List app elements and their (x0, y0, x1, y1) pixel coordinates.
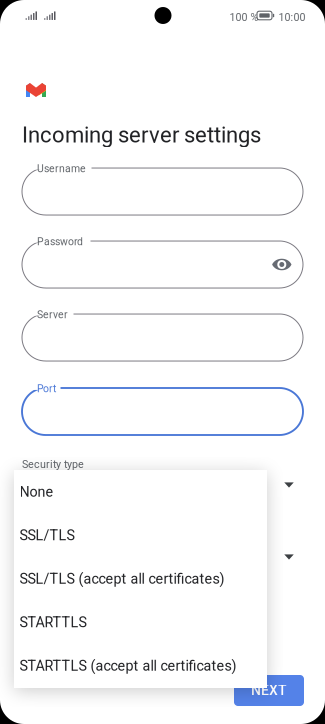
staticText: Username (37, 162, 86, 175)
staticText: 10:00 (278, 11, 305, 23)
staticText: 100 % (229, 11, 258, 23)
button[interactable]: Authentication (277, 547, 301, 567)
staticText: Password (37, 235, 83, 248)
staticText: None (19, 483, 53, 500)
button[interactable]: None (14, 470, 267, 513)
button[interactable]: STARTTLS (14, 600, 267, 644)
staticText: SSL/TLS (accept all certificates) (19, 570, 224, 587)
staticText: Incoming server settings (22, 122, 261, 148)
staticText: Server (37, 308, 68, 321)
button[interactable]: Security type (277, 475, 301, 495)
staticText: Port (37, 382, 56, 395)
button[interactable]: NEXT (234, 675, 304, 706)
button[interactable]: SSL/TLS (accept all certificates) (14, 557, 267, 600)
button[interactable]: SSL/TLS (14, 513, 267, 557)
staticText: SSL/TLS (19, 527, 74, 544)
staticText: Security type (22, 458, 84, 470)
staticText: STARTTLS (accept all certificates) (19, 657, 236, 674)
staticText: STARTTLS (19, 614, 86, 631)
button[interactable]: STARTTLS (accept all certificates) (14, 644, 267, 687)
staticText: NEXT (251, 682, 287, 699)
